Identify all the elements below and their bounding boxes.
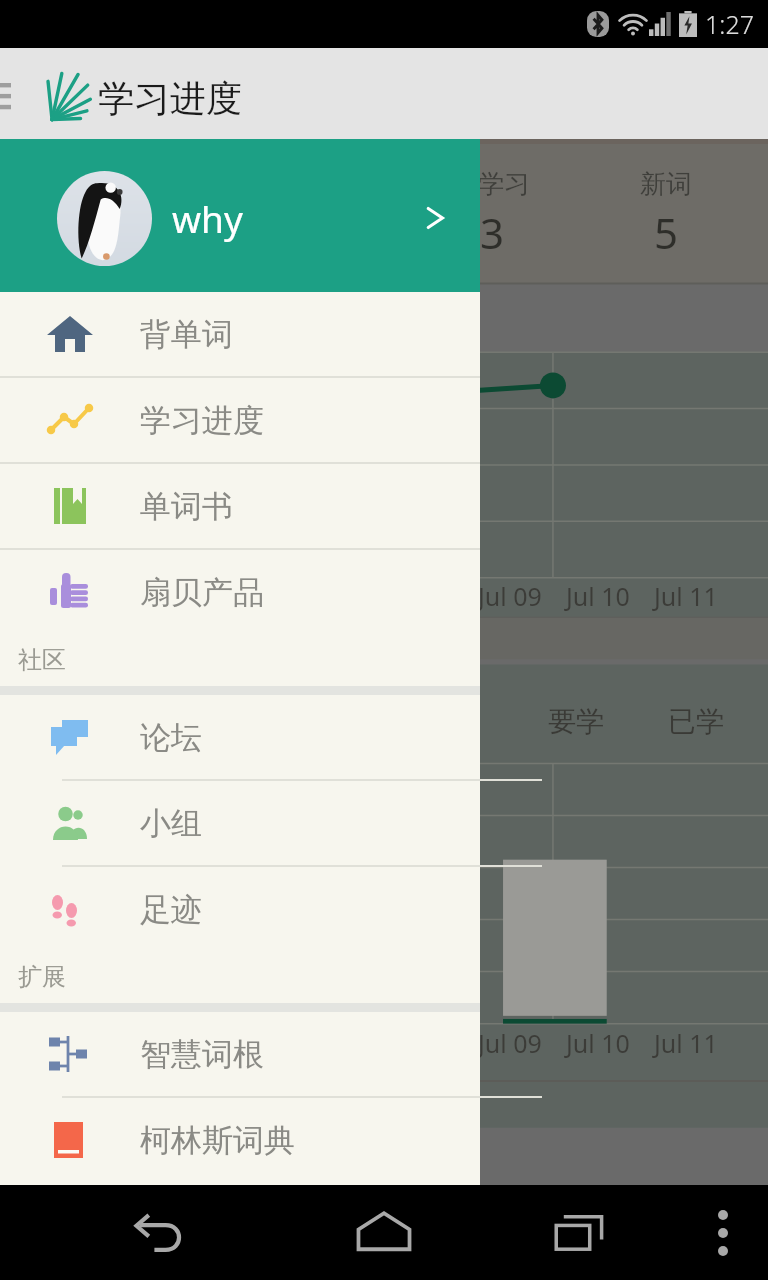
staticText: 单词书	[140, 487, 233, 526]
button[interactable]: Recent apps	[520, 1185, 640, 1280]
staticText: 小组	[140, 804, 202, 843]
staticText: 学习进度	[140, 401, 264, 440]
button[interactable]: Home	[314, 1185, 454, 1280]
staticText: 要学	[548, 704, 604, 739]
button[interactable]: 背单词	[0, 292, 480, 376]
staticText: 柯林斯词典	[140, 1121, 295, 1160]
staticText: 社区	[18, 645, 66, 675]
staticText: 扇贝产品	[140, 573, 264, 612]
staticText: 学习进度	[98, 76, 242, 121]
staticText: 新词	[640, 168, 692, 201]
button[interactable]: 柯林斯词典	[0, 1098, 480, 1182]
button[interactable]: why	[0, 144, 480, 292]
staticText: 智慧词根	[140, 1035, 264, 1074]
button[interactable]: 学习进度	[0, 378, 480, 462]
staticText: 足迹	[140, 890, 202, 929]
staticText: Jul 10	[566, 579, 630, 613]
button[interactable]: 扇贝产品	[0, 550, 480, 634]
staticText: Jul 11	[654, 1026, 718, 1060]
staticText: 5	[654, 204, 679, 261]
button[interactable]: More options	[678, 1185, 768, 1280]
staticText: 1:27	[705, 7, 754, 41]
staticText: 3	[480, 204, 505, 261]
button[interactable]: Open navigation drawer	[0, 48, 22, 144]
button[interactable]: 单词书	[0, 464, 480, 548]
button[interactable]: Back	[100, 1185, 220, 1280]
staticText: Jul 09	[478, 579, 542, 613]
button[interactable]: 足迹	[0, 867, 480, 951]
staticText: 论坛	[140, 718, 202, 757]
button[interactable]: 小组	[0, 781, 480, 865]
button[interactable]: 论坛	[0, 695, 480, 779]
staticText: why	[172, 193, 243, 243]
staticText: 背单词	[140, 315, 233, 354]
staticText: Jul 11	[654, 579, 718, 613]
staticText: 学习	[478, 168, 530, 201]
staticText: 扩展	[18, 962, 66, 992]
staticText: Jul 09	[478, 1026, 542, 1060]
button[interactable]: 智慧词根	[0, 1012, 480, 1096]
staticText: Jul 10	[566, 1026, 630, 1060]
staticText: 已学	[668, 704, 724, 739]
